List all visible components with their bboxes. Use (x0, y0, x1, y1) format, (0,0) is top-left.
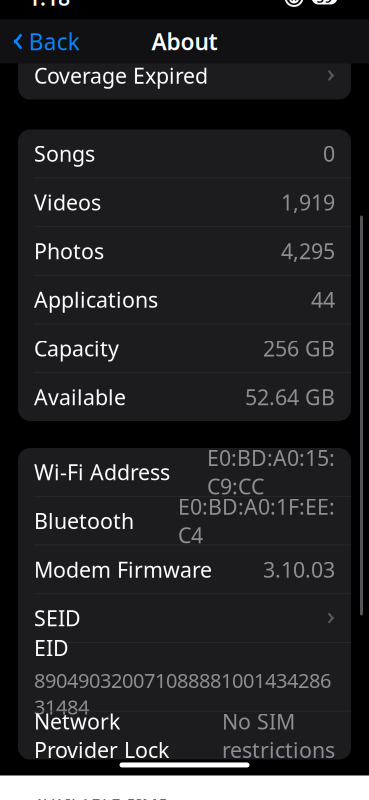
button[interactable]: SEID (18, 594, 351, 642)
staticText: 44 (311, 285, 335, 314)
staticText: Capacity (34, 334, 119, 362)
staticText: Songs (34, 139, 95, 168)
staticText: 3.10.03 (263, 555, 335, 583)
button[interactable]: EID (18, 643, 351, 711)
staticText: 1:18 (28, 0, 70, 12)
staticText: Available (34, 383, 126, 411)
staticText: Coverage Expired (34, 61, 208, 90)
button[interactable]: Network Provider Lock (18, 711, 351, 759)
button[interactable]: Videos (18, 178, 351, 226)
staticText: About (151, 26, 217, 56)
staticText: AVAILABLE SIMS (34, 793, 168, 800)
button[interactable]: Modem Firmware (18, 545, 351, 593)
staticText: 256 GB (263, 334, 335, 362)
staticText: 0 (323, 139, 335, 168)
staticText: 52.64 GB (245, 383, 335, 411)
button[interactable]: Songs (18, 129, 351, 177)
staticText: E0:BD:A0:1F:EE:C4 (178, 492, 335, 549)
staticText: 59 (316, 0, 332, 6)
button[interactable]: Applications (18, 276, 351, 324)
staticText: 1,919 (281, 188, 335, 216)
button[interactable]: Photos (18, 227, 351, 275)
button[interactable]: Bluetooth (18, 497, 351, 545)
staticText: SEID (34, 604, 81, 632)
staticText: Modem Firmware (34, 555, 212, 583)
staticText: Videos (34, 188, 101, 216)
staticText: Photos (34, 237, 104, 265)
button[interactable]: Available (18, 373, 351, 421)
staticText: EID (34, 634, 69, 662)
staticText: Back (29, 26, 80, 56)
staticText: Applications (34, 285, 158, 314)
staticText: 4,295 (281, 237, 335, 265)
staticText: No SIM restrictions (222, 707, 335, 764)
button[interactable]: Wi-Fi Address (18, 448, 351, 496)
staticText: 89049032007108888100143428631484 (34, 667, 331, 720)
staticText: Network Provider Lock (34, 707, 169, 764)
staticText: Bluetooth (34, 506, 134, 535)
staticText: E0:BD:A0:15:C9:CC (207, 444, 335, 500)
button[interactable]: Coverage Expired (18, 51, 351, 99)
staticText: Wi-Fi Address (34, 458, 170, 486)
button[interactable]: Capacity (18, 324, 351, 372)
button[interactable]: Back (0, 20, 90, 62)
